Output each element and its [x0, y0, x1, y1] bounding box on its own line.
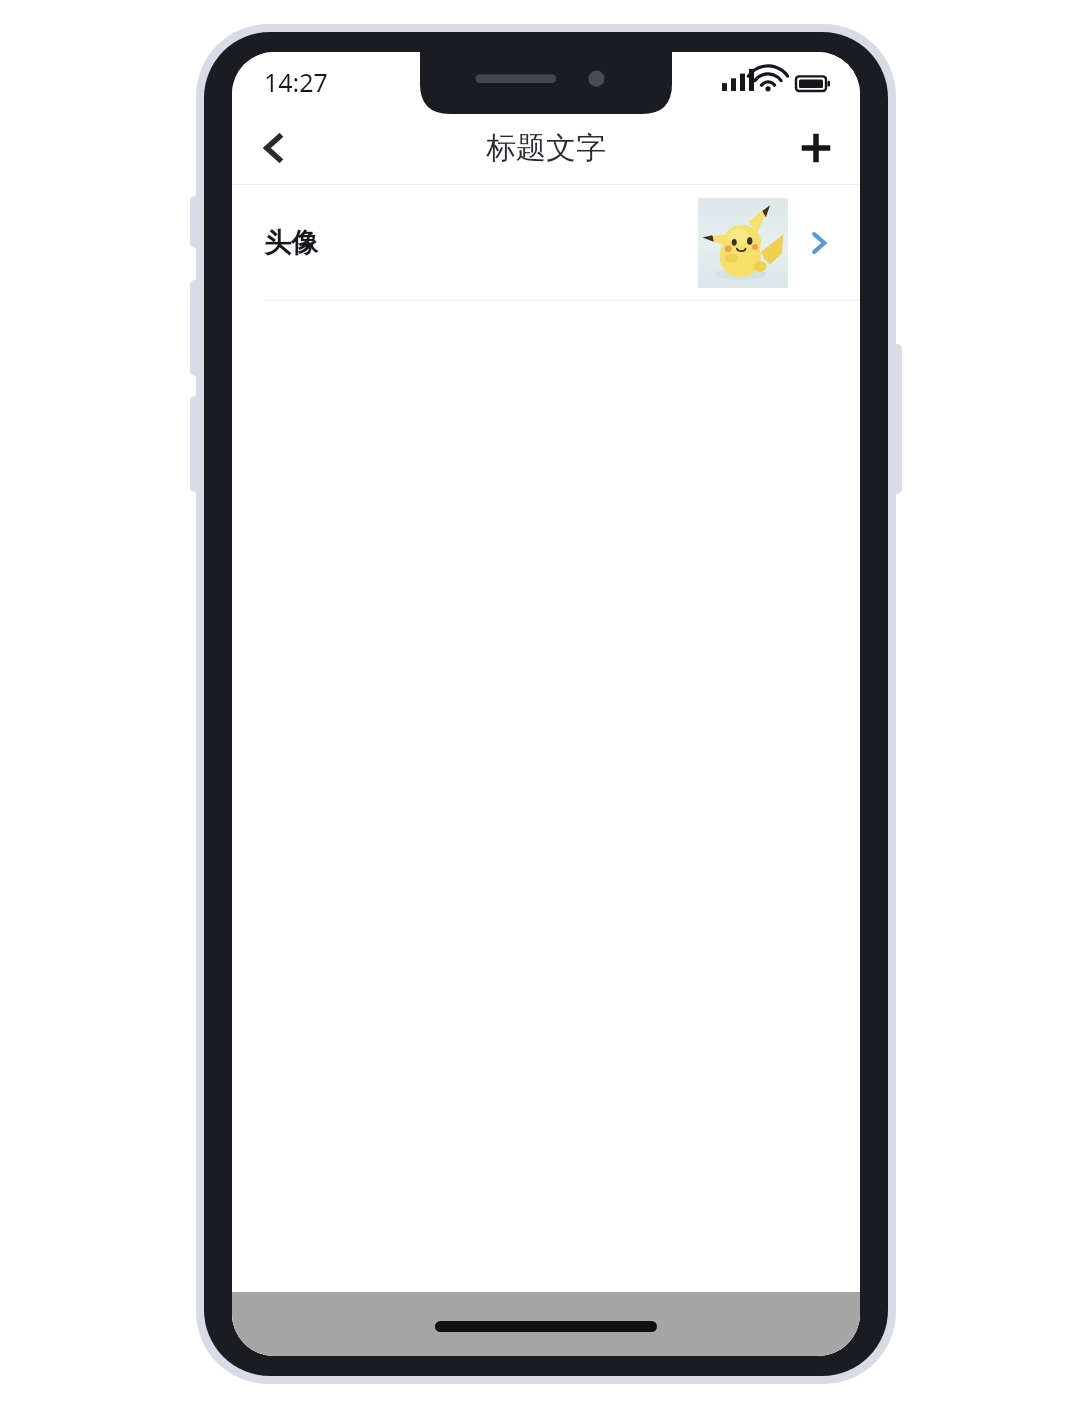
button[interactable]: 头像 — [232, 185, 860, 300]
staticText: 头像 — [264, 226, 318, 260]
button[interactable]: Back — [242, 116, 306, 180]
staticText: 标题文字 — [486, 129, 606, 167]
button[interactable]: Add — [784, 116, 848, 180]
staticText: 14:27 — [264, 65, 328, 99]
